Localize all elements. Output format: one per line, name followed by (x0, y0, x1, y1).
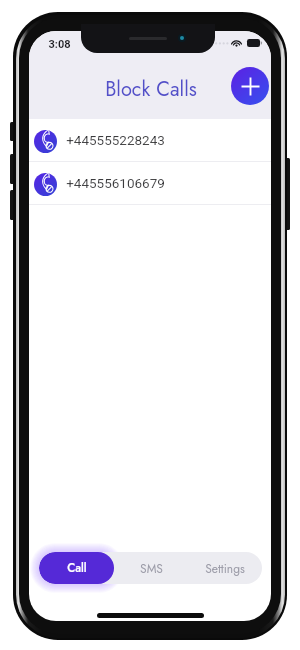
staticText: SMS (140, 560, 163, 577)
staticText: Block Calls (105, 75, 197, 104)
button[interactable]: +445556106679 (29, 162, 271, 204)
staticText: Call (67, 560, 87, 577)
staticText: 3:08 (48, 38, 71, 51)
staticText: Settings (205, 560, 245, 577)
button[interactable]: +445555228243 (29, 119, 271, 161)
staticText: +445555228243 (66, 132, 165, 148)
button[interactable]: Settings (188, 552, 262, 584)
button[interactable]: SMS (114, 552, 188, 584)
staticText: +445556106679 (66, 175, 165, 191)
button[interactable]: Call (39, 552, 114, 584)
button[interactable]: Add blocked number (231, 67, 269, 105)
